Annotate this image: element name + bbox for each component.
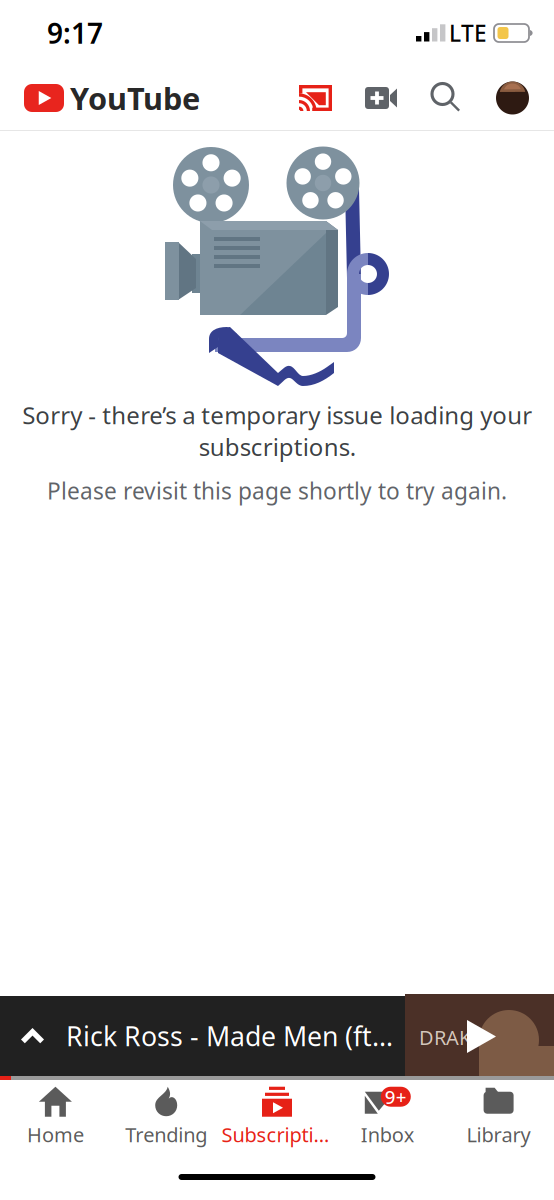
button[interactable]: Home	[0, 1078, 111, 1154]
staticText: Sorry - there’s a temporary issue loadin…	[22, 399, 532, 463]
button[interactable]: Search	[416, 73, 479, 122]
button[interactable]: YouTube	[0, 64, 200, 132]
button[interactable]: Account	[479, 69, 554, 126]
staticText: YouTube	[70, 78, 200, 118]
staticText: Inbox	[361, 1121, 415, 1148]
staticText: Rick Ross - Made Men (ft. Drake…	[66, 1018, 396, 1054]
staticText: 9+	[385, 1084, 407, 1109]
staticText: Home	[27, 1121, 84, 1148]
button[interactable]: Create video	[349, 73, 416, 123]
staticText: Trending	[125, 1121, 207, 1148]
button[interactable]: Subscriptions	[222, 1078, 332, 1154]
staticText: Please revisit this page shortly to try …	[47, 476, 507, 506]
button[interactable]: Trending	[111, 1078, 222, 1154]
staticText: LTE	[449, 18, 487, 48]
staticText: Subscriptions	[222, 1121, 332, 1148]
button[interactable]: Library	[443, 1078, 554, 1154]
staticText: 9:17	[47, 14, 103, 52]
staticText: DRAKE	[419, 1024, 482, 1051]
button[interactable]: Cast	[283, 73, 349, 123]
staticText: Library	[467, 1121, 531, 1148]
button[interactable]: Rick Ross - Made Men (ft. Drake…	[0, 996, 554, 1080]
button[interactable]: 9+	[332, 1078, 443, 1154]
